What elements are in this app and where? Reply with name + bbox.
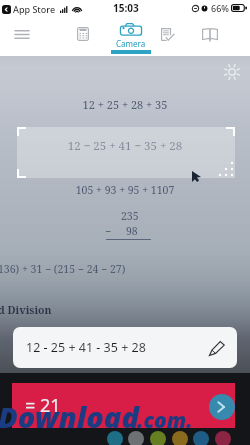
- staticText: 12 - 25 + 41 - 35 + 28: [26, 339, 146, 356]
- staticText: 136) + 31 − (215 − 24 − 27): [0, 262, 126, 276]
- other: Edit: [208, 339, 226, 357]
- button[interactable]: Next step: [209, 394, 235, 420]
- staticText: 12 + 25 + 28 + 35: [0, 97, 250, 112]
- button[interactable]: 12 - 25 + 41 - 35 + 28: [13, 327, 237, 368]
- staticText: 235: [121, 209, 139, 223]
- staticText: App Store: [13, 3, 56, 15]
- staticText: −: [105, 224, 112, 238]
- button[interactable]: Solutions: [155, 23, 181, 45]
- staticText: Camera: [116, 38, 146, 49]
- button[interactable]: Camera: [108, 18, 153, 56]
- staticText: = 21: [25, 393, 61, 418]
- button[interactable]: Textbook: [197, 23, 223, 45]
- staticText: 105 + 93 + 95 + 1107: [0, 183, 250, 197]
- staticText: .com.: [137, 406, 193, 435]
- button[interactable]: Flash: [224, 64, 240, 80]
- staticText: Download: [0, 397, 139, 436]
- staticText: 15:03: [113, 1, 139, 15]
- staticText: 98: [126, 224, 138, 238]
- staticText: 66%: [211, 2, 229, 14]
- staticText: d Division: [0, 303, 52, 317]
- button[interactable]: Menu: [9, 24, 35, 44]
- button[interactable]: Calculator: [70, 23, 95, 45]
- staticText: 12 − 25 + 41 − 35 + 28: [0, 138, 250, 154]
